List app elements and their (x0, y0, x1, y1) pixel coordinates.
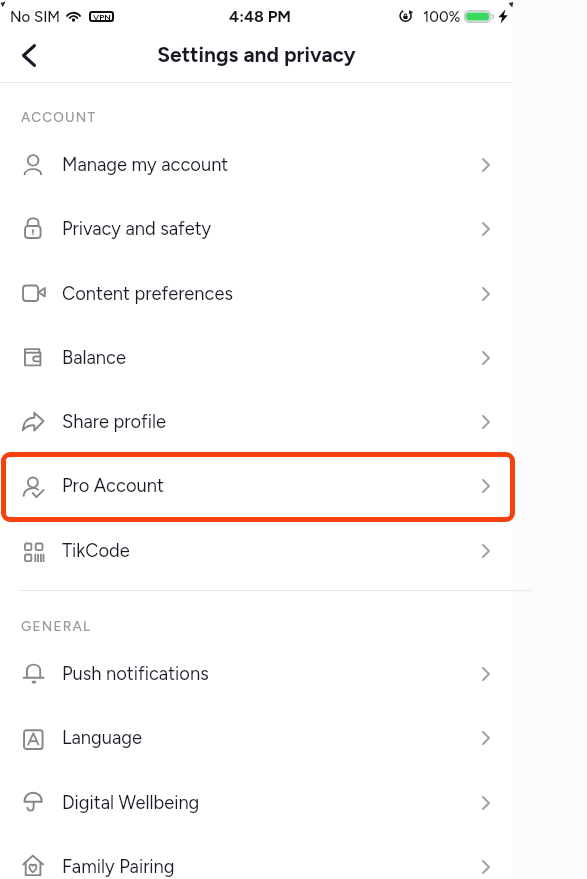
button[interactable]: Content preferences (0, 262, 512, 326)
staticText: Family Pairing (62, 856, 175, 878)
staticText: Push notifications (62, 663, 209, 685)
button[interactable]: TikCode (0, 519, 512, 583)
button[interactable]: Push notifications (0, 642, 512, 706)
staticText: ACCOUNT (21, 109, 97, 125)
staticText: No SIM (10, 8, 61, 26)
button[interactable]: Pro Account highlight (1, 452, 515, 522)
button[interactable]: Pro Account (0, 454, 512, 518)
button[interactable]: Share profile (0, 390, 512, 454)
staticText: Balance (62, 347, 126, 369)
button[interactable]: Balance (0, 326, 512, 390)
button[interactable]: Digital Wellbeing (0, 771, 512, 835)
staticText: Language (62, 727, 143, 749)
staticText: 100% (423, 8, 461, 26)
staticText: Digital Wellbeing (62, 792, 200, 814)
button[interactable]: Manage my account (0, 133, 512, 197)
staticText: Content preferences (62, 283, 233, 305)
staticText: Manage my account (62, 154, 229, 176)
staticText: Pro Account (62, 475, 164, 497)
button[interactable]: Family Pairing (0, 835, 512, 879)
button[interactable]: Language (0, 706, 512, 770)
staticText: 4:48 PM (229, 7, 292, 26)
staticText: GENERAL (21, 618, 92, 634)
button[interactable]: Privacy and safety (0, 197, 512, 261)
staticText: TikCode (62, 540, 130, 562)
staticText: Settings and privacy (157, 42, 356, 67)
staticText: VPN (93, 12, 111, 22)
button[interactable]: Back (8, 35, 50, 76)
staticText: Share profile (62, 411, 167, 433)
staticText: Privacy and safety (62, 218, 212, 240)
